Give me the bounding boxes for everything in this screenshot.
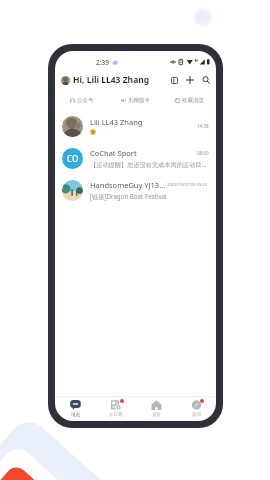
button[interactable]: Lili LL43 Zhang [55, 110, 216, 142]
button[interactable]: 首页 [136, 397, 176, 418]
button[interactable]: 消息 [55, 397, 96, 418]
button[interactable]: 收藏消息 [162, 94, 216, 107]
button[interactable]: 乐聊助手 [108, 94, 162, 107]
staticText: HandsomeGuy YJ13… [90, 180, 166, 190]
staticText: Lili LL43 Zhang [90, 117, 143, 127]
button[interactable]: Search [200, 74, 212, 86]
staticText: CO [67, 153, 79, 164]
staticText: 乐聊助手 [128, 97, 150, 104]
staticText: 今日看 [109, 412, 123, 418]
staticText: 14:38 [197, 123, 209, 129]
staticText: 08:00 [197, 150, 209, 156]
button[interactable]: Add [184, 74, 196, 86]
staticText: Hi, Lili LL43 Zhang [73, 74, 150, 86]
button[interactable]: HandsomeGuy YJ13… [55, 174, 216, 206]
staticText: 发现 [192, 412, 201, 418]
staticText: CoChat Sport [90, 148, 197, 158]
staticText: 2:39 [96, 58, 109, 67]
button[interactable]: 发现 [176, 397, 216, 418]
button[interactable]: 公众号 [55, 94, 108, 107]
staticText: 消息 [71, 412, 80, 418]
button[interactable]: CO [55, 142, 216, 174]
staticText: 收藏消息 [182, 97, 204, 104]
staticText: 2022/10/27 09:39:23 [167, 182, 207, 188]
button[interactable]: Contacts [168, 74, 180, 86]
button[interactable]: 今日看 [96, 397, 136, 418]
staticText: [链接]Dragon Boat Festival [90, 192, 167, 200]
staticText: 【运动提醒】您还没有完成本周的运动目… [90, 160, 207, 168]
staticText: 首页 [152, 412, 161, 418]
staticText: 公众号 [77, 97, 94, 104]
